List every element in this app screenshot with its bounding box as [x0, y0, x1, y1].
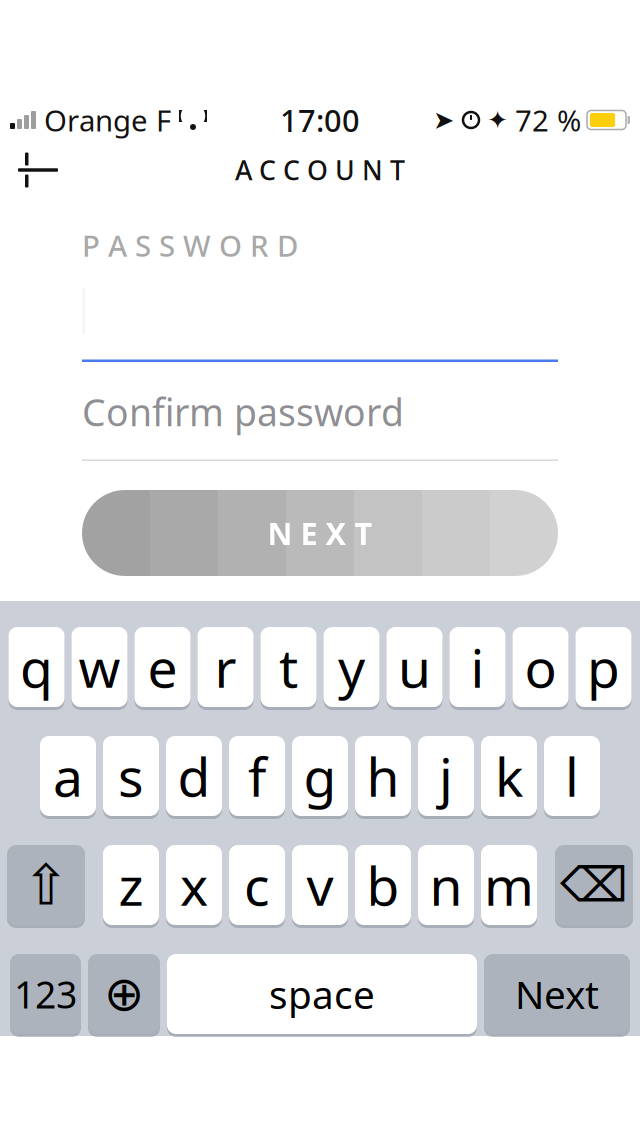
- button[interactable]: space: [167, 954, 477, 1037]
- staticText: x: [180, 850, 208, 920]
- staticText: w: [78, 632, 120, 702]
- button[interactable]: 123: [10, 954, 81, 1037]
- staticText: ➤: [433, 106, 454, 134]
- staticText: y: [338, 632, 365, 702]
- staticText: f: [248, 741, 266, 811]
- button[interactable]: n: [418, 845, 474, 928]
- staticText: ⇧: [22, 853, 69, 917]
- staticText: j: [439, 741, 453, 811]
- button[interactable]: h: [355, 736, 411, 819]
- button[interactable]: N E X T: [82, 490, 558, 576]
- button[interactable]: i: [449, 627, 505, 710]
- staticText: k: [495, 741, 523, 811]
- button[interactable]: f: [229, 736, 285, 819]
- button[interactable]: s: [103, 736, 159, 819]
- button[interactable]: w: [71, 627, 127, 710]
- staticText: t: [279, 632, 298, 702]
- staticText: P A S S W O R D: [82, 226, 298, 265]
- button[interactable]: c: [229, 845, 285, 928]
- button[interactable]: y: [323, 627, 379, 710]
- button[interactable]: a: [40, 736, 96, 819]
- staticText: c: [244, 850, 270, 920]
- staticText: A C C O U N T: [235, 152, 405, 188]
- button[interactable]: z: [103, 845, 159, 928]
- button[interactable]: l: [544, 736, 600, 819]
- button[interactable]: Delete: [555, 845, 633, 928]
- staticText: Orange F: [44, 100, 171, 139]
- staticText: N E X T: [267, 513, 372, 553]
- staticText: s: [118, 741, 144, 811]
- button[interactable]: p: [575, 627, 631, 710]
- staticText: q: [20, 632, 53, 702]
- button[interactable]: d: [166, 736, 222, 819]
- staticText: 17:00: [280, 100, 360, 140]
- staticText: a: [53, 741, 83, 811]
- button[interactable]: Next keyboard: [88, 954, 160, 1037]
- button[interactable]: q: [8, 627, 64, 710]
- staticText: z: [118, 850, 143, 920]
- button[interactable]: u: [386, 627, 442, 710]
- staticText: i: [470, 632, 484, 702]
- button[interactable]: Shift: [7, 845, 85, 928]
- staticText: l: [565, 741, 579, 811]
- staticText: Confirm password: [82, 387, 404, 437]
- staticText: v: [306, 850, 333, 920]
- staticText: g: [303, 741, 336, 811]
- button[interactable]: t: [260, 627, 316, 710]
- button[interactable]: b: [355, 845, 411, 928]
- button[interactable]: m: [481, 845, 537, 928]
- button[interactable]: v: [292, 845, 348, 928]
- staticText: 72 %: [515, 100, 581, 139]
- button[interactable]: Next: [484, 954, 630, 1037]
- button[interactable]: o: [512, 627, 568, 710]
- staticText: b: [366, 850, 399, 920]
- button[interactable]: e: [134, 627, 190, 710]
- staticText: space: [269, 968, 375, 1020]
- button[interactable]: Back: [0, 140, 76, 200]
- staticText: ✦: [487, 106, 508, 134]
- staticText: ⊕: [104, 967, 144, 1021]
- staticText: o: [524, 632, 556, 702]
- button[interactable]: k: [481, 736, 537, 819]
- staticText: r: [214, 632, 236, 702]
- button[interactable]: r: [197, 627, 253, 710]
- staticText: h: [366, 741, 399, 811]
- staticText: e: [147, 632, 177, 702]
- button[interactable]: g: [292, 736, 348, 819]
- staticText: Next: [515, 968, 599, 1020]
- staticText: 123: [14, 969, 77, 1019]
- button[interactable]: j: [418, 736, 474, 819]
- staticText: u: [398, 632, 431, 702]
- button[interactable]: x: [166, 845, 222, 928]
- staticText: d: [177, 741, 210, 811]
- staticText: ⌫: [560, 858, 628, 912]
- staticText: m: [484, 850, 534, 920]
- staticText: n: [429, 850, 462, 920]
- staticText: p: [587, 632, 620, 702]
